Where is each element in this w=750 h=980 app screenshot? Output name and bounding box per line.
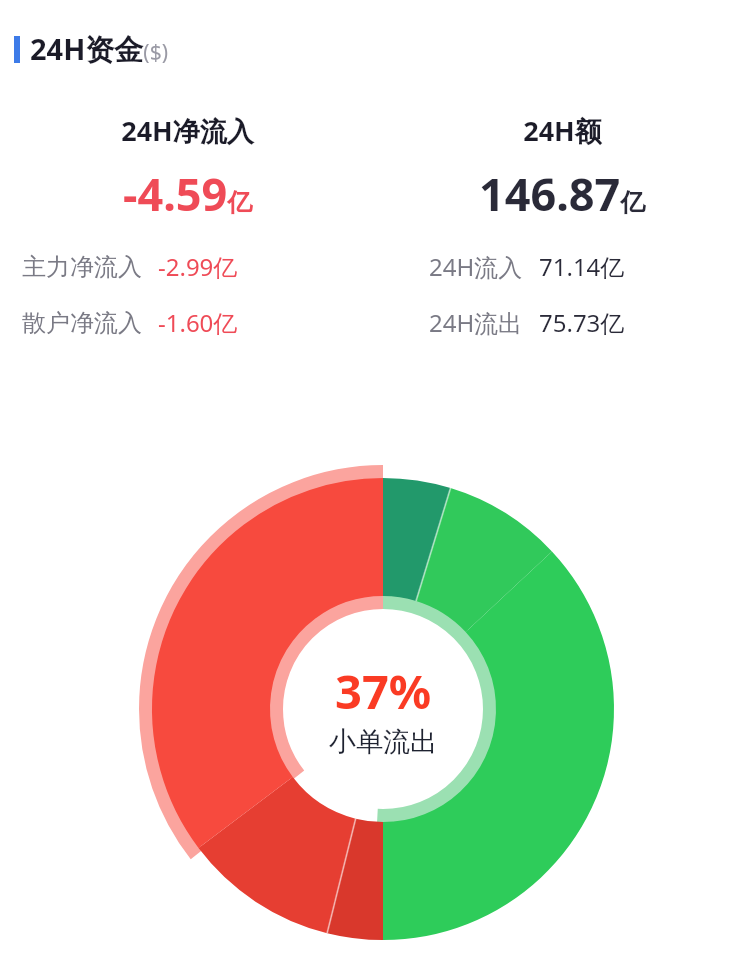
staticText: 71.14亿 (539, 250, 625, 283)
button[interactable]: 24H流出 (429, 306, 750, 339)
other: 资金流向环形图 (0, 0, 750, 980)
staticText: 24H流出 (429, 306, 523, 339)
button[interactable]: 散户净流入 (22, 306, 375, 339)
staticText: 24H流入 (429, 250, 523, 283)
staticText: 37% (335, 659, 432, 723)
staticText: -1.60亿 (158, 306, 238, 339)
button[interactable]: 37% (273, 641, 493, 777)
staticText: 主力净流入 (22, 252, 142, 282)
button[interactable]: 24H额 (375, 112, 750, 339)
staticText: 24H额 (523, 112, 602, 149)
staticText: -2.99亿 (158, 250, 238, 283)
staticText: 小单流出 (329, 725, 437, 759)
button[interactable]: 24H资金($) (14, 29, 750, 69)
staticText: 146.87亿 (479, 163, 646, 224)
button[interactable]: 24H流入 (429, 250, 750, 283)
staticText: 75.73亿 (539, 306, 625, 339)
button[interactable]: 主力净流入 (22, 250, 375, 283)
staticText: -4.59亿 (123, 163, 253, 224)
button[interactable]: 24H净流入 (0, 112, 375, 339)
staticText: 散户净流入 (22, 308, 142, 338)
staticText: 24H净流入 (121, 112, 254, 149)
staticText: 24H资金($) (30, 29, 168, 69)
